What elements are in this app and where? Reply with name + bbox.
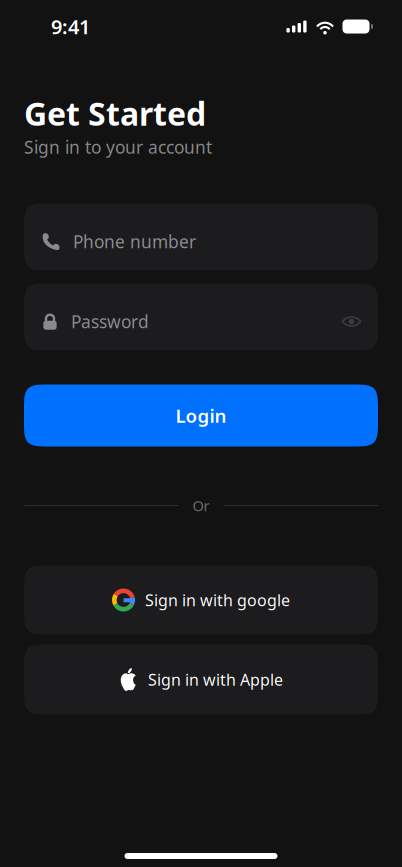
staticText: Sign in to your account [24,135,212,158]
staticText: Get Started [24,92,206,134]
staticText: Phone number [73,230,196,253]
staticText: Login [175,403,226,428]
staticText: Sign in with google [145,589,290,611]
staticText: 9:41 [51,13,90,40]
button[interactable]: Login [24,384,378,446]
staticText: Password [71,310,149,333]
button[interactable]: Sign in with Apple [24,644,378,714]
staticText: Sign in with Apple [148,669,283,690]
staticText: Or [192,496,209,515]
button[interactable]: Show password [342,315,361,327]
button[interactable]: Sign in with google [24,565,378,634]
